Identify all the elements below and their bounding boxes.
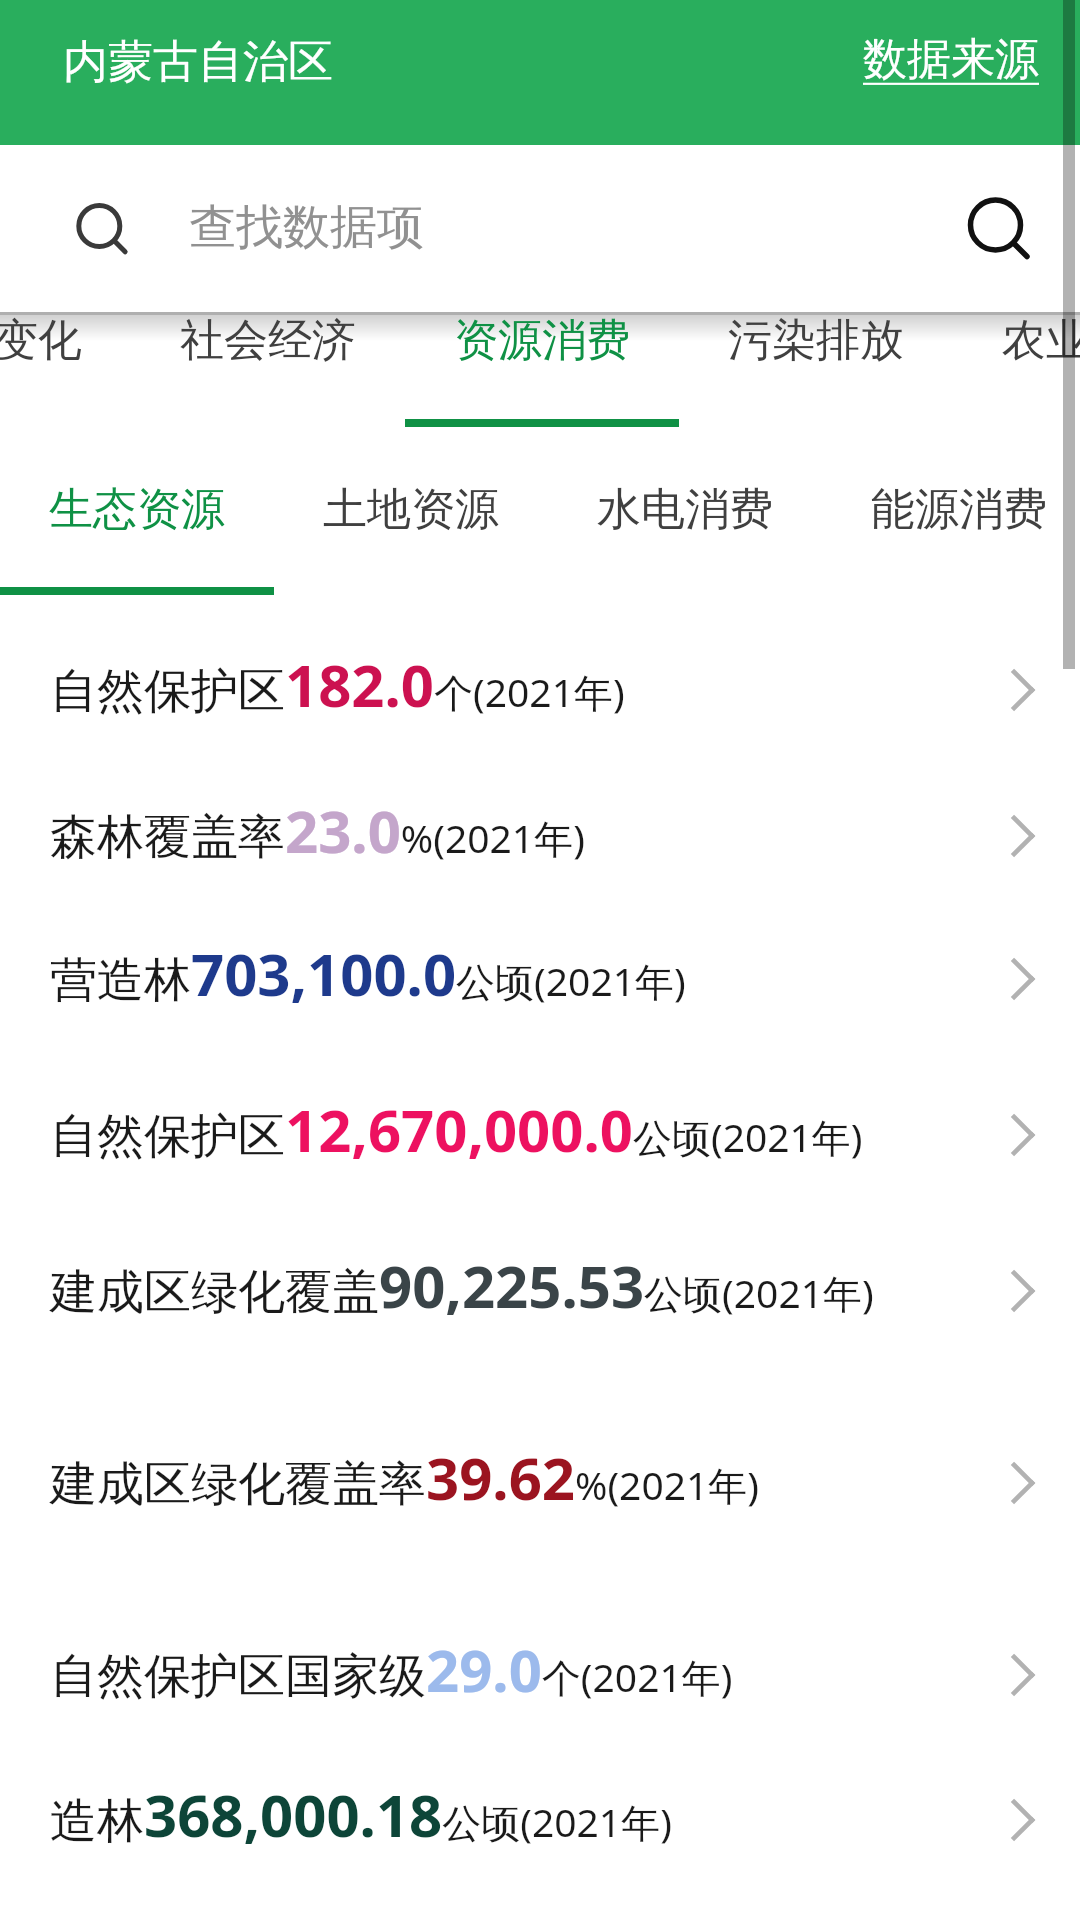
button[interactable]: 生态资源 [0, 482, 274, 594]
staticText: 水电消费 [597, 482, 773, 537]
button[interactable]: 土地资源 [274, 482, 548, 594]
staticText: 社会经济 [180, 313, 356, 368]
button[interactable]: 森林覆盖率23.0%(2021年) [0, 770, 1080, 890]
button[interactable]: 造林368,000.18公顷(2021年) [0, 1754, 1080, 1874]
button[interactable]: Search [960, 190, 1040, 270]
button[interactable]: 数据来源 [843, 14, 1059, 105]
staticText: 农业面源 [1002, 313, 1080, 368]
button[interactable]: 气候变化 [0, 313, 131, 425]
staticText: 生态资源 [49, 482, 225, 537]
button[interactable]: 社会经济 [131, 313, 405, 425]
staticText: 能源消费 [871, 482, 1047, 537]
button[interactable]: Search [68, 195, 138, 265]
button[interactable]: 资源消费 [405, 313, 679, 425]
button[interactable]: 污染排放 [679, 313, 953, 425]
button[interactable]: 建成区绿化覆盖率39.62%(2021年) [0, 1417, 1080, 1537]
staticText: 建成区绿化覆盖90,225.53公顷(2021年) [50, 1246, 874, 1325]
button[interactable]: 水电消费 [548, 482, 822, 594]
staticText: 造林368,000.18公顷(2021年) [50, 1775, 672, 1854]
button[interactable]: 自然保护区182.0个(2021年) [0, 624, 1080, 744]
staticText: 土地资源 [323, 482, 499, 537]
staticText: 营造林703,100.0公顷(2021年) [50, 934, 686, 1013]
staticText: 内蒙古自治区 [63, 34, 333, 91]
staticText: 数据来源 [863, 32, 1039, 87]
button[interactable]: 建成区绿化覆盖90,225.53公顷(2021年) [0, 1225, 1080, 1345]
button[interactable]: 营造林703,100.0公顷(2021年) [0, 913, 1080, 1033]
button[interactable]: 自然保护区国家级29.0个(2021年) [0, 1609, 1080, 1729]
staticText: 森林覆盖率23.0%(2021年) [50, 791, 585, 870]
button[interactable]: 能源消费 [822, 482, 1080, 594]
staticText: 建成区绿化覆盖率39.62%(2021年) [50, 1438, 760, 1517]
staticText: 自然保护区182.0个(2021年) [50, 645, 625, 724]
staticText: 资源消费 [454, 313, 630, 368]
staticText: 自然保护区12,670,000.0公顷(2021年) [50, 1090, 863, 1169]
staticText: 查找数据项 [189, 198, 424, 257]
button[interactable]: 农业面源 [953, 313, 1080, 425]
staticText: 污染排放 [728, 313, 904, 368]
staticText: 自然保护区国家级29.0个(2021年) [50, 1630, 733, 1709]
button[interactable]: 自然保护区12,670,000.0公顷(2021年) [0, 1069, 1080, 1189]
staticText: 气候变化 [0, 313, 82, 368]
